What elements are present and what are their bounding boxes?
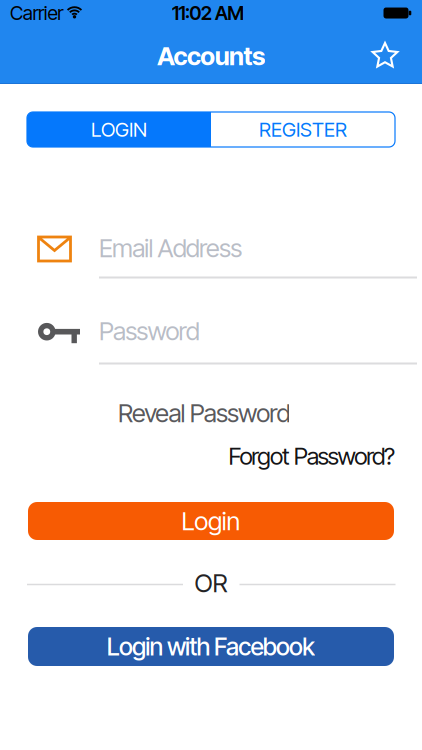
staticText: 11:02 AM — [172, 1, 244, 25]
staticText: Forgot Password? — [228, 441, 395, 470]
button[interactable]: Forgot Password? — [75, 441, 395, 471]
staticText: Login — [182, 506, 240, 536]
button[interactable]: LOGIN — [27, 112, 211, 147]
button[interactable]: Login — [28, 502, 394, 540]
staticText: Accounts — [157, 41, 265, 71]
staticText: REGISTER — [259, 117, 347, 142]
staticText: Password — [99, 316, 200, 346]
staticText: Email Address — [99, 233, 242, 263]
staticText: OR — [194, 568, 227, 598]
button[interactable]: Reveal Password — [118, 398, 398, 428]
staticText: Login with Facebook — [107, 632, 315, 661]
staticText: LOGIN — [91, 117, 147, 142]
staticText: Reveal Password — [118, 398, 290, 428]
staticText: Carrier — [10, 1, 63, 25]
button[interactable]: Login with Facebook — [28, 627, 394, 666]
button[interactable] — [371, 43, 398, 69]
button[interactable]: REGISTER — [211, 112, 395, 147]
